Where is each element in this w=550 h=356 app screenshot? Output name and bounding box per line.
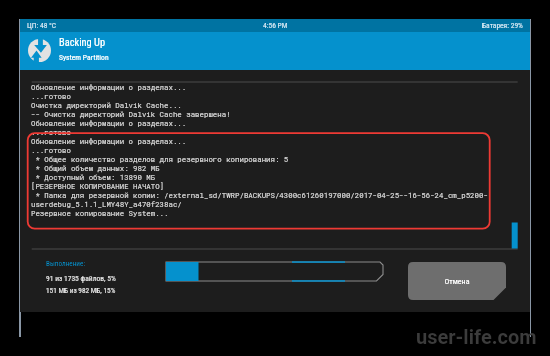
button[interactable]: TWRP logo bbox=[20, 32, 530, 70]
staticText: Батарея: 29% bbox=[482, 21, 523, 30]
staticText: ЦП: 48 °C bbox=[27, 21, 57, 30]
staticText: Обновление информации о разделах... bbox=[31, 118, 187, 128]
staticText: userdebug_5.1.1_LMY48Y_a470f238ac/ bbox=[31, 199, 182, 209]
staticText: * Папка для резервной копии: /external_s… bbox=[31, 190, 488, 200]
staticText: * Общее количество разделов для резервно… bbox=[31, 154, 289, 164]
staticText: user-life.com bbox=[416, 325, 537, 348]
staticText: [РЕЗЕРВНОЕ КОПИРОВАНИЕ НАЧАТО] bbox=[31, 181, 165, 191]
staticText: * Общий объем данных: 982 МБ bbox=[31, 163, 160, 173]
staticText: Обновление информации о разделах... bbox=[31, 82, 187, 92]
staticText: ...готово bbox=[31, 91, 71, 101]
staticText: * Доступный объем: 13890 МБ bbox=[31, 172, 156, 182]
staticText: 151 МБ из 982 МБ, 15% bbox=[46, 286, 116, 295]
staticText: ...готово bbox=[31, 145, 71, 155]
other: TWRP logo bbox=[28, 39, 51, 62]
button[interactable]: Отмена bbox=[408, 262, 506, 300]
staticText: -- Очистка директорий Dalvik Cache завер… bbox=[31, 109, 231, 119]
staticText: 4:56 PM bbox=[263, 21, 288, 30]
staticText: Резервное копирование System... bbox=[31, 208, 169, 218]
staticText: Отмена bbox=[444, 277, 470, 286]
staticText: 91 из 1735 файлов, 5% bbox=[46, 274, 116, 283]
staticText: System Partition bbox=[59, 53, 109, 62]
staticText: Выполнение: bbox=[46, 259, 86, 267]
staticText: Обновление информации о разделах... bbox=[31, 136, 187, 146]
staticText: Очистка директорий Dalvik Cache... bbox=[31, 100, 182, 110]
staticText: ...готово bbox=[31, 127, 71, 137]
staticText: Backing Up bbox=[59, 36, 106, 48]
